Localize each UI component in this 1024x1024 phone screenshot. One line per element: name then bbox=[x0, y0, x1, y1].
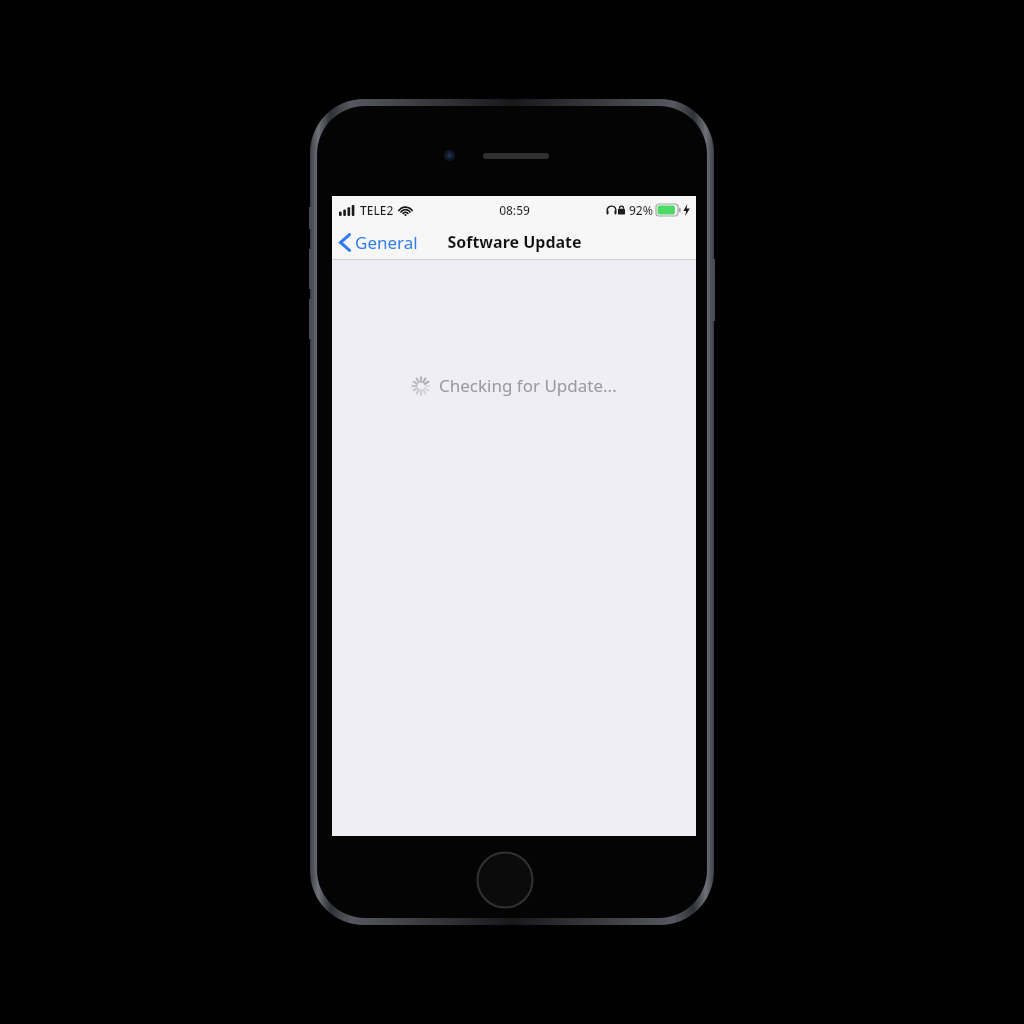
staticText: TELE2 bbox=[360, 202, 394, 218]
staticText: 92% bbox=[629, 202, 653, 218]
staticText: Software Update bbox=[447, 231, 582, 253]
staticText: 08:59 bbox=[499, 202, 530, 218]
staticText: Checking for Update... bbox=[439, 374, 617, 397]
button[interactable]: Home bbox=[476, 851, 534, 909]
button[interactable]: General bbox=[332, 224, 426, 260]
staticText: General bbox=[355, 231, 418, 254]
